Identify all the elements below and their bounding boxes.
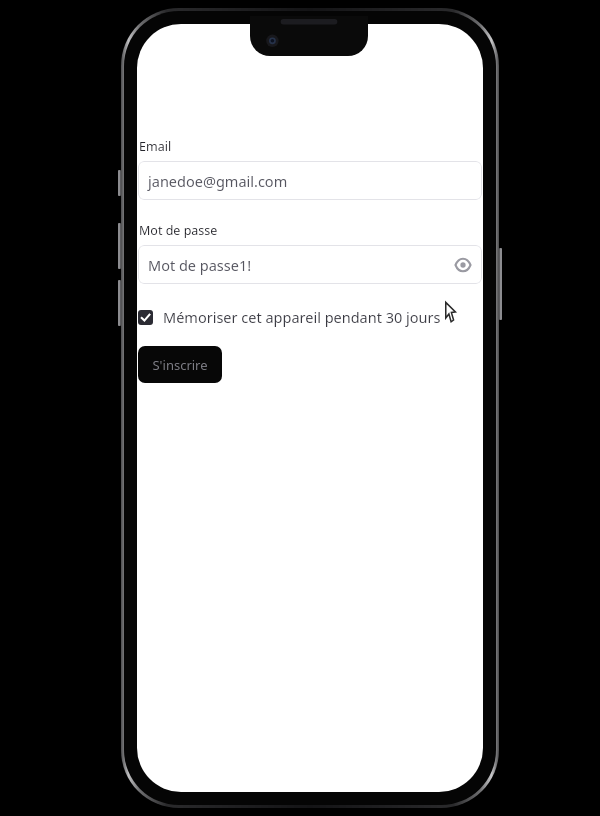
button[interactable]: Mot de passe1! [138, 245, 482, 284]
button[interactable]: S'inscrire [138, 346, 222, 383]
staticText: janedoe@gmail.com [148, 171, 288, 191]
button[interactable]: Afficher le mot de passe [452, 254, 474, 276]
staticText: Mot de passe [139, 222, 218, 239]
staticText: Mot de passe1! [148, 255, 252, 275]
staticText: Email [139, 138, 172, 155]
staticText: S'inscrire [152, 356, 208, 374]
staticText: Mémoriser cet appareil pendant 30 jours [163, 307, 441, 327]
button[interactable]: Mémoriser cet appareil pendant 30 jours [138, 305, 441, 329]
button[interactable]: janedoe@gmail.com [138, 161, 482, 200]
